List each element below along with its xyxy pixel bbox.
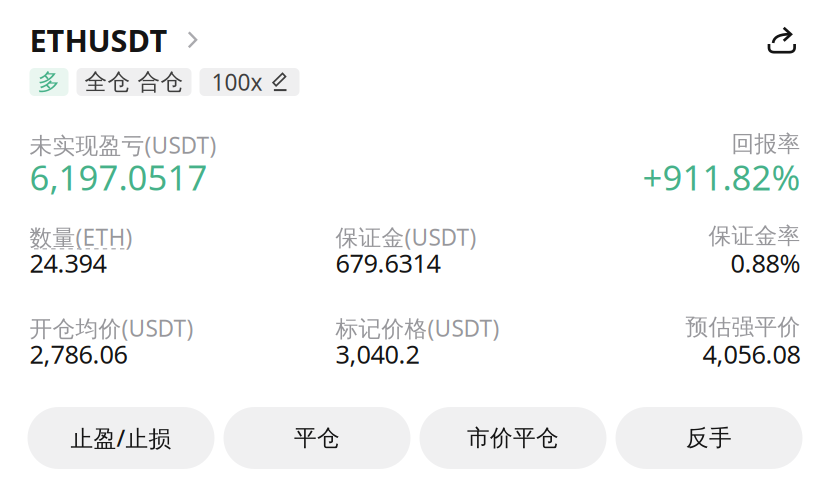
staticText: 开仓均价(USDT) (29, 313, 193, 343)
button[interactable]: 数量(ETH) (29, 222, 132, 246)
staticText: 6,197.0517 (29, 154, 207, 200)
staticText: 4,056.08 (702, 337, 800, 371)
button[interactable]: ETHUSDT (29, 20, 197, 60)
staticText: 0.88% (730, 246, 800, 280)
staticText: 多 (37, 68, 60, 96)
staticText: ETHUSDT (29, 20, 167, 60)
staticText: 数量(ETH) (29, 222, 132, 252)
staticText: 100x (211, 67, 262, 97)
button[interactable]: 反手 (615, 407, 802, 469)
staticText: 反手 (686, 424, 732, 452)
staticText: 679.6314 (335, 246, 440, 280)
staticText: 平仓 (294, 424, 340, 452)
staticText: 全仓 合仓 (84, 68, 183, 96)
staticText: 未实现盈亏(USDT) (29, 130, 216, 160)
staticText: 止盈/止损 (70, 423, 171, 453)
staticText: 标记价格(USDT) (335, 313, 499, 343)
staticText: 24.394 (29, 246, 106, 280)
staticText: +911.82% (642, 154, 800, 200)
staticText: 2,786.06 (29, 337, 127, 371)
staticText: 保证金(USDT) (335, 222, 476, 252)
staticText: 市价平仓 (467, 424, 559, 452)
button[interactable]: 全仓 合仓 (76, 68, 191, 96)
button[interactable]: 止盈/止损 (27, 407, 214, 469)
button[interactable]: 平仓 (223, 407, 410, 469)
button[interactable]: Share (767, 26, 796, 54)
button[interactable]: 100x (199, 68, 299, 96)
staticText: 回报率 (731, 130, 800, 158)
button[interactable]: 多 (29, 68, 68, 96)
staticText: 保证金率 (708, 222, 800, 250)
button[interactable]: 市价平仓 (419, 407, 606, 469)
staticText: 3,040.2 (335, 337, 419, 371)
staticText: 预估强平价 (685, 313, 800, 341)
